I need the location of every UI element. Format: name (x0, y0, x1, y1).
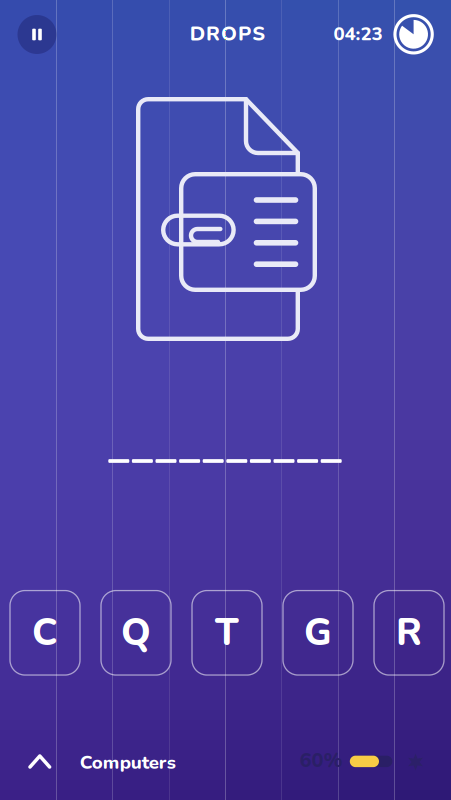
staticText: R (396, 607, 422, 658)
button[interactable]: R (374, 590, 444, 675)
staticText: 60% (299, 747, 342, 774)
staticText: T (215, 607, 239, 658)
button[interactable]: Q (101, 590, 171, 675)
staticText: 04:23 (333, 21, 382, 47)
staticText: Computers (80, 750, 176, 775)
button[interactable]: G (283, 590, 353, 675)
button[interactable]: C (10, 590, 80, 675)
staticText: C (32, 607, 58, 658)
button[interactable]: Pause (15, 12, 59, 56)
button[interactable]: T (192, 590, 262, 675)
staticText: DROPS (190, 20, 265, 48)
staticText: Q (121, 607, 151, 658)
button[interactable]: Show topic (0, 0, 451, 800)
staticText: G (304, 607, 332, 658)
